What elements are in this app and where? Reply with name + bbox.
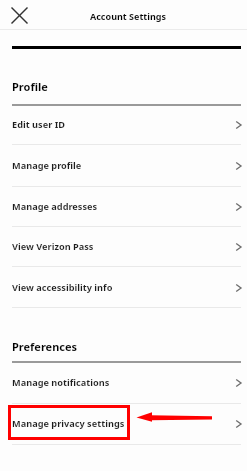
button[interactable]: View accessibility info bbox=[0, 267, 247, 308]
button[interactable]: Manage privacy settings bbox=[0, 403, 247, 444]
button[interactable]: Manage profile bbox=[0, 145, 247, 186]
staticText: Manage privacy settings bbox=[12, 417, 235, 430]
staticText: Profile bbox=[12, 79, 48, 94]
staticText: View accessibility info bbox=[12, 281, 235, 294]
staticText: Account Settings bbox=[90, 10, 166, 22]
staticText: Edit user ID bbox=[12, 118, 235, 131]
button[interactable]: Manage notifications bbox=[0, 362, 247, 403]
button[interactable]: Edit user ID bbox=[0, 104, 247, 145]
staticText: Manage profile bbox=[12, 159, 235, 172]
button[interactable]: View Verizon Pass bbox=[0, 226, 247, 267]
staticText: Manage addresses bbox=[12, 200, 235, 213]
staticText: Manage notifications bbox=[12, 376, 235, 389]
staticText: View Verizon Pass bbox=[12, 240, 235, 253]
button[interactable]: Close bbox=[9, 5, 30, 26]
button[interactable]: Manage addresses bbox=[0, 186, 247, 227]
staticText: Preferences bbox=[12, 339, 78, 354]
